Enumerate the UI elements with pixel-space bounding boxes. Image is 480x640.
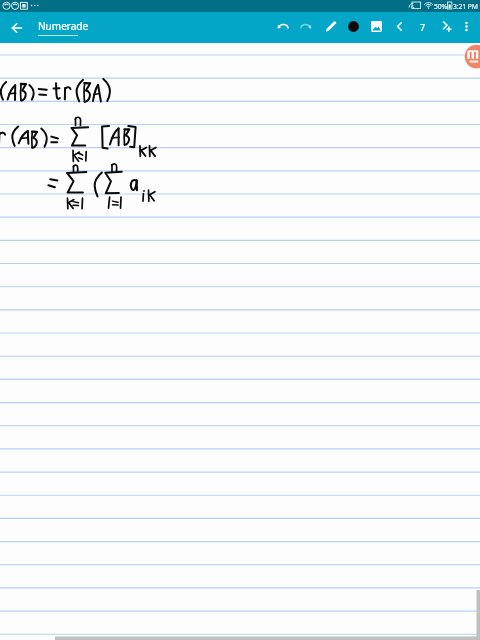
- button[interactable]: Insert image: [367, 17, 386, 36]
- button[interactable]: Add page: [437, 17, 456, 36]
- button[interactable]: Numerade: [36, 15, 94, 41]
- button[interactable]: 7: [413, 17, 432, 36]
- button[interactable]: Back: [7, 18, 27, 38]
- button[interactable]: Pen: [322, 17, 341, 36]
- button[interactable]: Previous page: [390, 17, 409, 36]
- staticText: Numerade: [38, 19, 89, 33]
- button[interactable]: Undo: [274, 17, 293, 36]
- staticText: 3:21 PM: [453, 2, 478, 11]
- button[interactable]: More options: [457, 17, 476, 36]
- button[interactable]: Redo: [296, 17, 315, 36]
- button[interactable]: Colour: [344, 17, 363, 36]
- staticText: 50%: [434, 2, 448, 11]
- staticText: 7: [420, 21, 426, 33]
